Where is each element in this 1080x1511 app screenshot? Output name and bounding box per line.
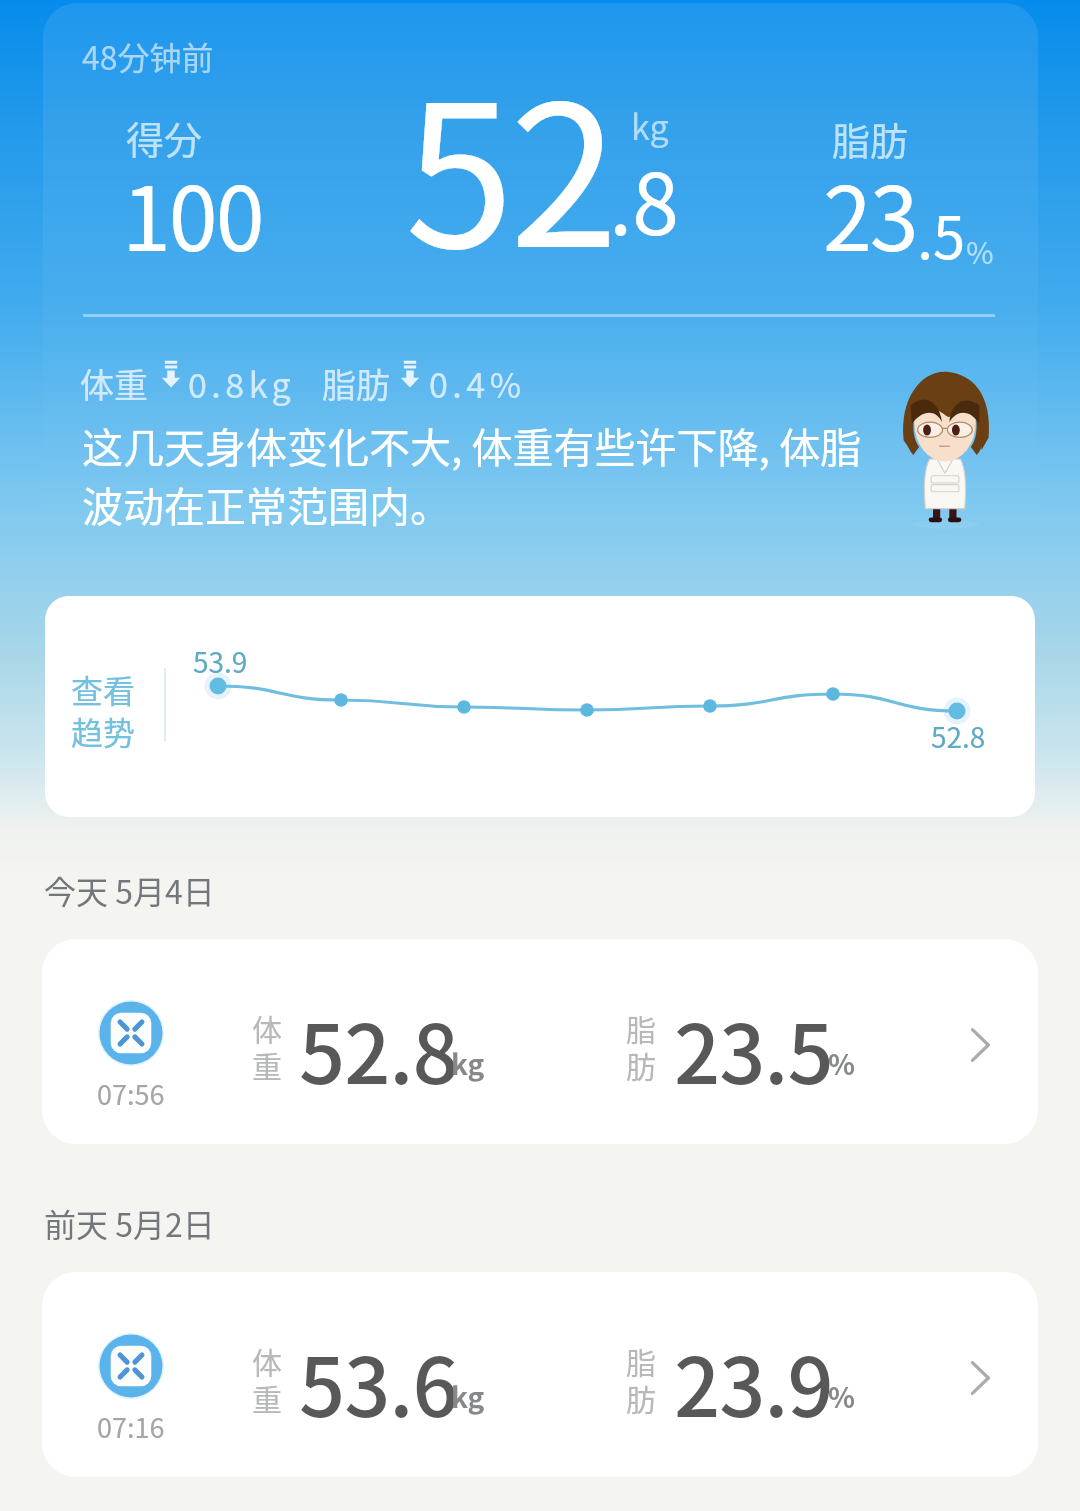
staticText: 48分钟前 xyxy=(82,33,214,79)
staticText: kg xyxy=(451,1043,485,1084)
staticText: .8 xyxy=(609,138,679,260)
staticText: 查看 xyxy=(71,666,136,712)
staticText: 52.8 xyxy=(299,990,458,1107)
staticText: 23.5 xyxy=(674,990,833,1107)
button[interactable]: 查看 xyxy=(45,596,1035,817)
staticText: 得分 xyxy=(126,110,203,165)
staticText: 体 xyxy=(252,1006,282,1049)
staticText: 07:16 xyxy=(97,1407,165,1446)
staticText: % xyxy=(966,229,994,272)
staticText: 趋势 xyxy=(71,708,136,754)
staticText: 53.9 xyxy=(193,641,248,682)
staticText: 重 xyxy=(252,1043,282,1086)
staticText: 重 xyxy=(252,1376,282,1419)
staticText: 波动在正常范围内。 xyxy=(82,474,451,533)
staticText: kg xyxy=(451,1376,485,1417)
staticText: 07:56 xyxy=(97,1074,165,1113)
staticText: 这几天身体变化不大, 体重有些许下降, 体脂 xyxy=(82,415,862,474)
button[interactable]: 查看详情 xyxy=(950,1017,1006,1073)
staticText: 100 xyxy=(122,149,263,276)
staticText: 体 xyxy=(252,1339,282,1382)
staticText: 52.8 xyxy=(931,716,986,757)
button[interactable]: 07:56 xyxy=(42,939,1038,1144)
button[interactable]: 48分钟前 xyxy=(43,3,1038,559)
staticText: .5 xyxy=(917,192,966,276)
staticText: 52 xyxy=(405,20,615,304)
staticText: 53.6 xyxy=(299,1323,458,1440)
staticText: % xyxy=(828,1043,855,1084)
staticText: 今天 5月4日 xyxy=(44,867,215,913)
button[interactable]: 07:16 xyxy=(42,1272,1038,1477)
staticText: 肪 xyxy=(626,1376,656,1419)
staticText: 脂肪 xyxy=(832,111,909,166)
staticText: 0.8kg xyxy=(188,359,296,408)
staticText: 脂肪 xyxy=(322,359,390,408)
button[interactable]: 查看详情 xyxy=(950,1350,1006,1406)
staticText: % xyxy=(828,1376,855,1417)
staticText: kg xyxy=(631,101,669,150)
staticText: 23 xyxy=(823,149,917,276)
staticText: 脂 xyxy=(626,1339,656,1382)
staticText: 23.9 xyxy=(674,1323,833,1440)
staticText: 脂 xyxy=(626,1006,656,1049)
staticText: 肪 xyxy=(626,1043,656,1086)
staticText: 0.4% xyxy=(429,359,526,408)
staticText: 前天 5月2日 xyxy=(44,1200,215,1246)
staticText: 体重 xyxy=(80,359,148,408)
